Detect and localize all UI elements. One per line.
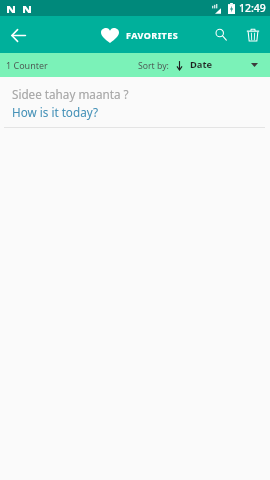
- staticText: Sidee tahay maanta ?: [12, 86, 129, 102]
- staticText: How is it today?: [12, 104, 98, 120]
- staticText: FAVORITES: [126, 29, 179, 41]
- button[interactable]: FAVORITES: [97, 22, 183, 47]
- button[interactable]: Sort by:: [135, 56, 216, 75]
- staticText: 1 Counter: [6, 59, 48, 71]
- button[interactable]: Search: [205, 19, 237, 51]
- button[interactable]: Sidee tahay maanta ?: [0, 77, 270, 127]
- staticText: Date: [190, 58, 213, 71]
- button[interactable]: Delete: [237, 19, 269, 51]
- staticText: Sort by:: [138, 60, 169, 72]
- staticText: 12:49: [239, 1, 266, 15]
- button[interactable]: Back: [0, 17, 36, 53]
- button[interactable]: Sort order: [244, 55, 264, 75]
